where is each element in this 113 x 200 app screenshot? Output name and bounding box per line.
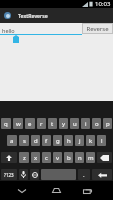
button[interactable]: j <box>75 135 84 146</box>
staticText: h <box>67 137 71 145</box>
button[interactable]: Home <box>42 181 70 200</box>
button[interactable]: i <box>81 118 90 129</box>
button[interactable]: n <box>75 152 84 163</box>
button[interactable]: Voice input <box>19 169 28 180</box>
button[interactable]: q <box>1 118 11 129</box>
staticText: ?123 <box>4 172 14 178</box>
staticText: d <box>34 137 38 145</box>
staticText: a <box>10 137 14 145</box>
button[interactable]: u <box>70 118 79 129</box>
button[interactable]: TextReverse app icon <box>4 12 11 19</box>
staticText: TextReverse <box>18 12 48 19</box>
button[interactable]: m <box>86 152 95 163</box>
button[interactable]: p <box>103 118 112 129</box>
staticText: z <box>23 154 26 162</box>
button[interactable]: Emoji <box>30 169 39 180</box>
staticText: o <box>95 120 99 128</box>
staticText: v <box>56 154 60 162</box>
button[interactable]: y <box>59 118 68 129</box>
button[interactable]: w <box>13 118 23 129</box>
button[interactable]: Enter <box>92 169 112 180</box>
staticText: f <box>45 137 48 145</box>
button[interactable]: o <box>92 118 101 129</box>
button[interactable]: g <box>53 135 62 146</box>
staticText: s <box>23 137 26 145</box>
staticText: k <box>89 137 93 145</box>
button[interactable]: d <box>31 135 40 146</box>
staticText: m <box>88 154 94 162</box>
button[interactable]: l <box>97 135 106 146</box>
button[interactable]: x <box>31 152 40 163</box>
staticText: i <box>85 120 87 128</box>
button[interactable]: Shift <box>1 152 17 163</box>
staticText: q <box>4 120 8 128</box>
staticText: x <box>34 154 38 162</box>
button[interactable]: Backspace <box>97 152 112 163</box>
staticText: u <box>73 120 77 128</box>
staticText: 10:03 <box>95 0 111 8</box>
staticText: l <box>101 137 103 145</box>
staticText: t <box>51 120 54 128</box>
button[interactable]: f <box>42 135 51 146</box>
button[interactable]: b <box>64 152 73 163</box>
button[interactable]: h <box>64 135 73 146</box>
staticText: c <box>45 154 48 162</box>
button[interactable]: ?123 <box>1 169 17 180</box>
button[interactable]: k <box>86 135 95 146</box>
button[interactable]: e <box>25 118 35 129</box>
button[interactable]: v <box>53 152 62 163</box>
button[interactable]: a <box>7 135 17 146</box>
button[interactable]: c <box>42 152 51 163</box>
button[interactable]: Recent apps <box>73 181 101 200</box>
staticText: . <box>83 171 85 179</box>
staticText: b <box>67 154 71 162</box>
staticText: Reverse <box>86 25 109 33</box>
staticText: e <box>28 120 32 128</box>
button[interactable]: . <box>78 169 90 180</box>
button[interactable]: r <box>37 118 46 129</box>
button[interactable]: Reverse <box>82 23 113 34</box>
staticText: y <box>62 120 66 128</box>
button[interactable]: Back <box>8 181 36 200</box>
button[interactable]: s <box>19 135 29 146</box>
staticText: w <box>16 120 21 128</box>
staticText: p <box>106 120 110 128</box>
button[interactable]: t <box>48 118 57 129</box>
staticText: hello <box>2 27 15 34</box>
staticText: n <box>78 154 82 162</box>
staticText: g <box>56 137 60 145</box>
button[interactable]: z <box>19 152 29 163</box>
staticText: j <box>79 137 81 145</box>
staticText: r <box>40 120 43 128</box>
